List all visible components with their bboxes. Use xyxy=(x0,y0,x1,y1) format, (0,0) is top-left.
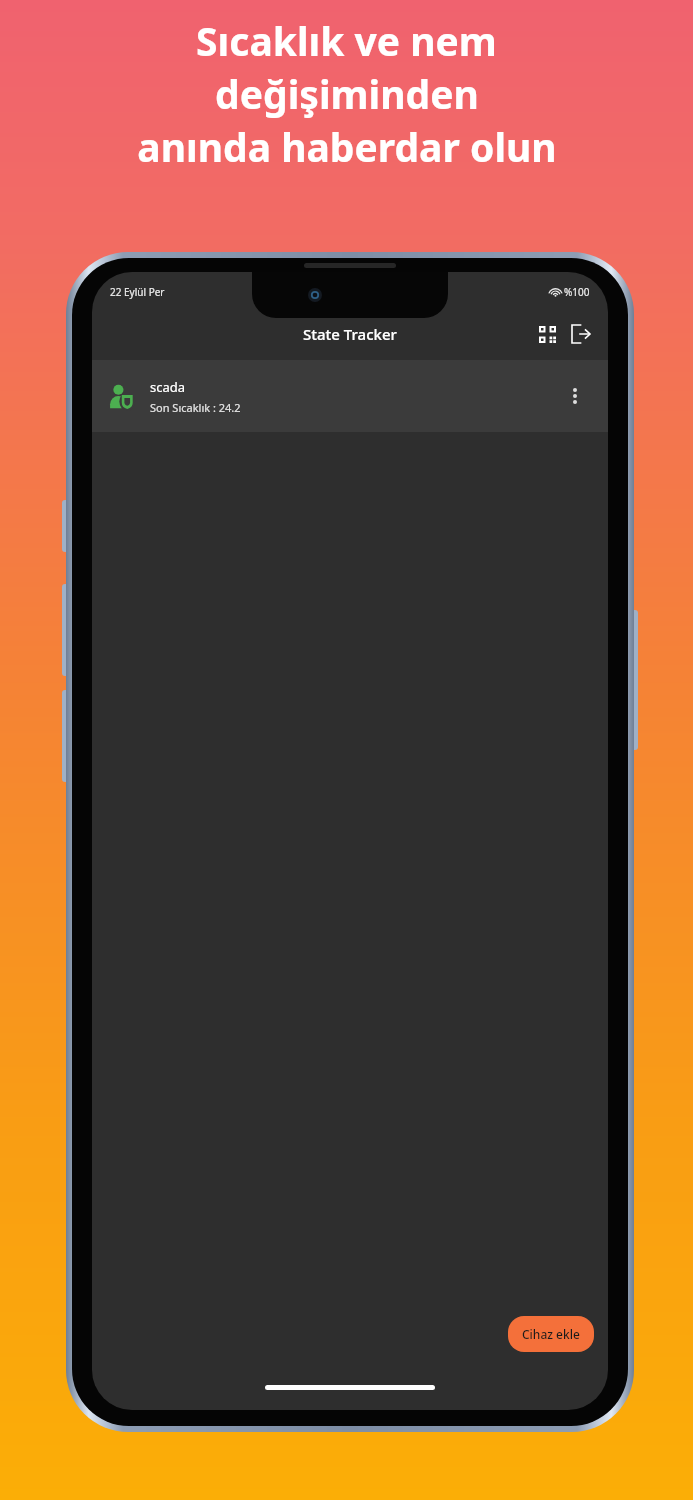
staticText: scada xyxy=(150,378,186,396)
staticText: Cihaz ekle xyxy=(522,1326,580,1342)
staticText: 22 Eylül Per xyxy=(110,285,165,299)
staticText: değişiminden xyxy=(215,67,479,120)
button[interactable]: More options xyxy=(558,379,592,413)
staticText: Son Sıcaklık : 24.2 xyxy=(150,400,241,415)
button[interactable]: Scan QR code xyxy=(530,317,564,351)
button[interactable]: scada xyxy=(92,360,608,432)
staticText: %100 xyxy=(564,285,590,299)
button[interactable]: Log out xyxy=(564,317,598,351)
staticText: anında haberdar olun xyxy=(137,120,557,173)
button[interactable]: Cihaz ekle xyxy=(508,1316,594,1352)
staticText: State Tracker xyxy=(303,324,397,344)
staticText: Sıcaklık ve nem xyxy=(196,14,497,67)
